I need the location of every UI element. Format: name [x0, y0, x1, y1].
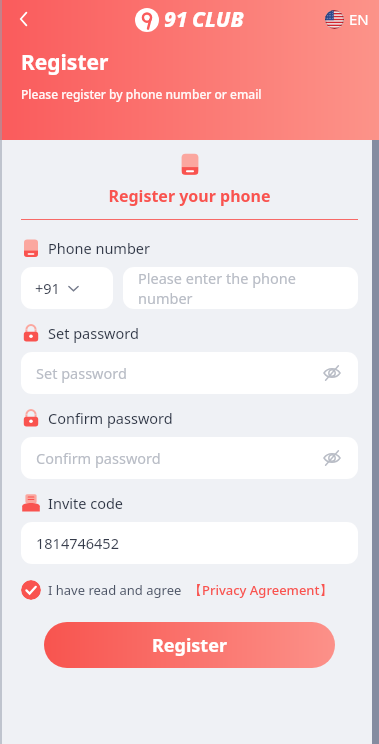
button[interactable]: Register [44, 622, 335, 668]
staticText: Set password [36, 363, 320, 383]
staticText: Register [152, 633, 227, 658]
button[interactable]: Confirm password [21, 437, 358, 479]
button[interactable]: Toggle password visibility [320, 361, 344, 385]
staticText: Please enter the phone number [138, 268, 343, 308]
button[interactable]: Please enter the phone number [123, 267, 358, 309]
staticText: 1814746452 [36, 533, 119, 553]
staticText: CLUB [192, 5, 244, 34]
button[interactable]: 【Privacy Agreement】 [189, 581, 333, 599]
staticText: Phone number [48, 238, 150, 258]
staticText: EN [349, 9, 369, 29]
button[interactable]: Set password [21, 352, 358, 394]
button[interactable]: Toggle password visibility [320, 446, 344, 470]
staticText: I have read and agree [48, 581, 182, 599]
staticText: Confirm password [36, 448, 320, 468]
staticText: +91 [35, 278, 60, 298]
button[interactable]: Agree to privacy agreement [21, 580, 41, 600]
button[interactable]: EN [325, 9, 369, 29]
staticText: 【Privacy Agreement】 [189, 581, 333, 599]
button[interactable]: 1814746452 [21, 522, 358, 564]
staticText: Please register by phone number or email [21, 86, 262, 102]
staticText: 91 [164, 5, 188, 34]
staticText: Confirm password [48, 408, 173, 428]
button[interactable]: Back [8, 3, 40, 35]
staticText: Register your phone [108, 185, 271, 207]
staticText: Register [21, 48, 109, 77]
staticText: Set password [48, 323, 139, 343]
staticText: Invite code [48, 493, 123, 513]
button[interactable]: +91 [21, 267, 113, 309]
